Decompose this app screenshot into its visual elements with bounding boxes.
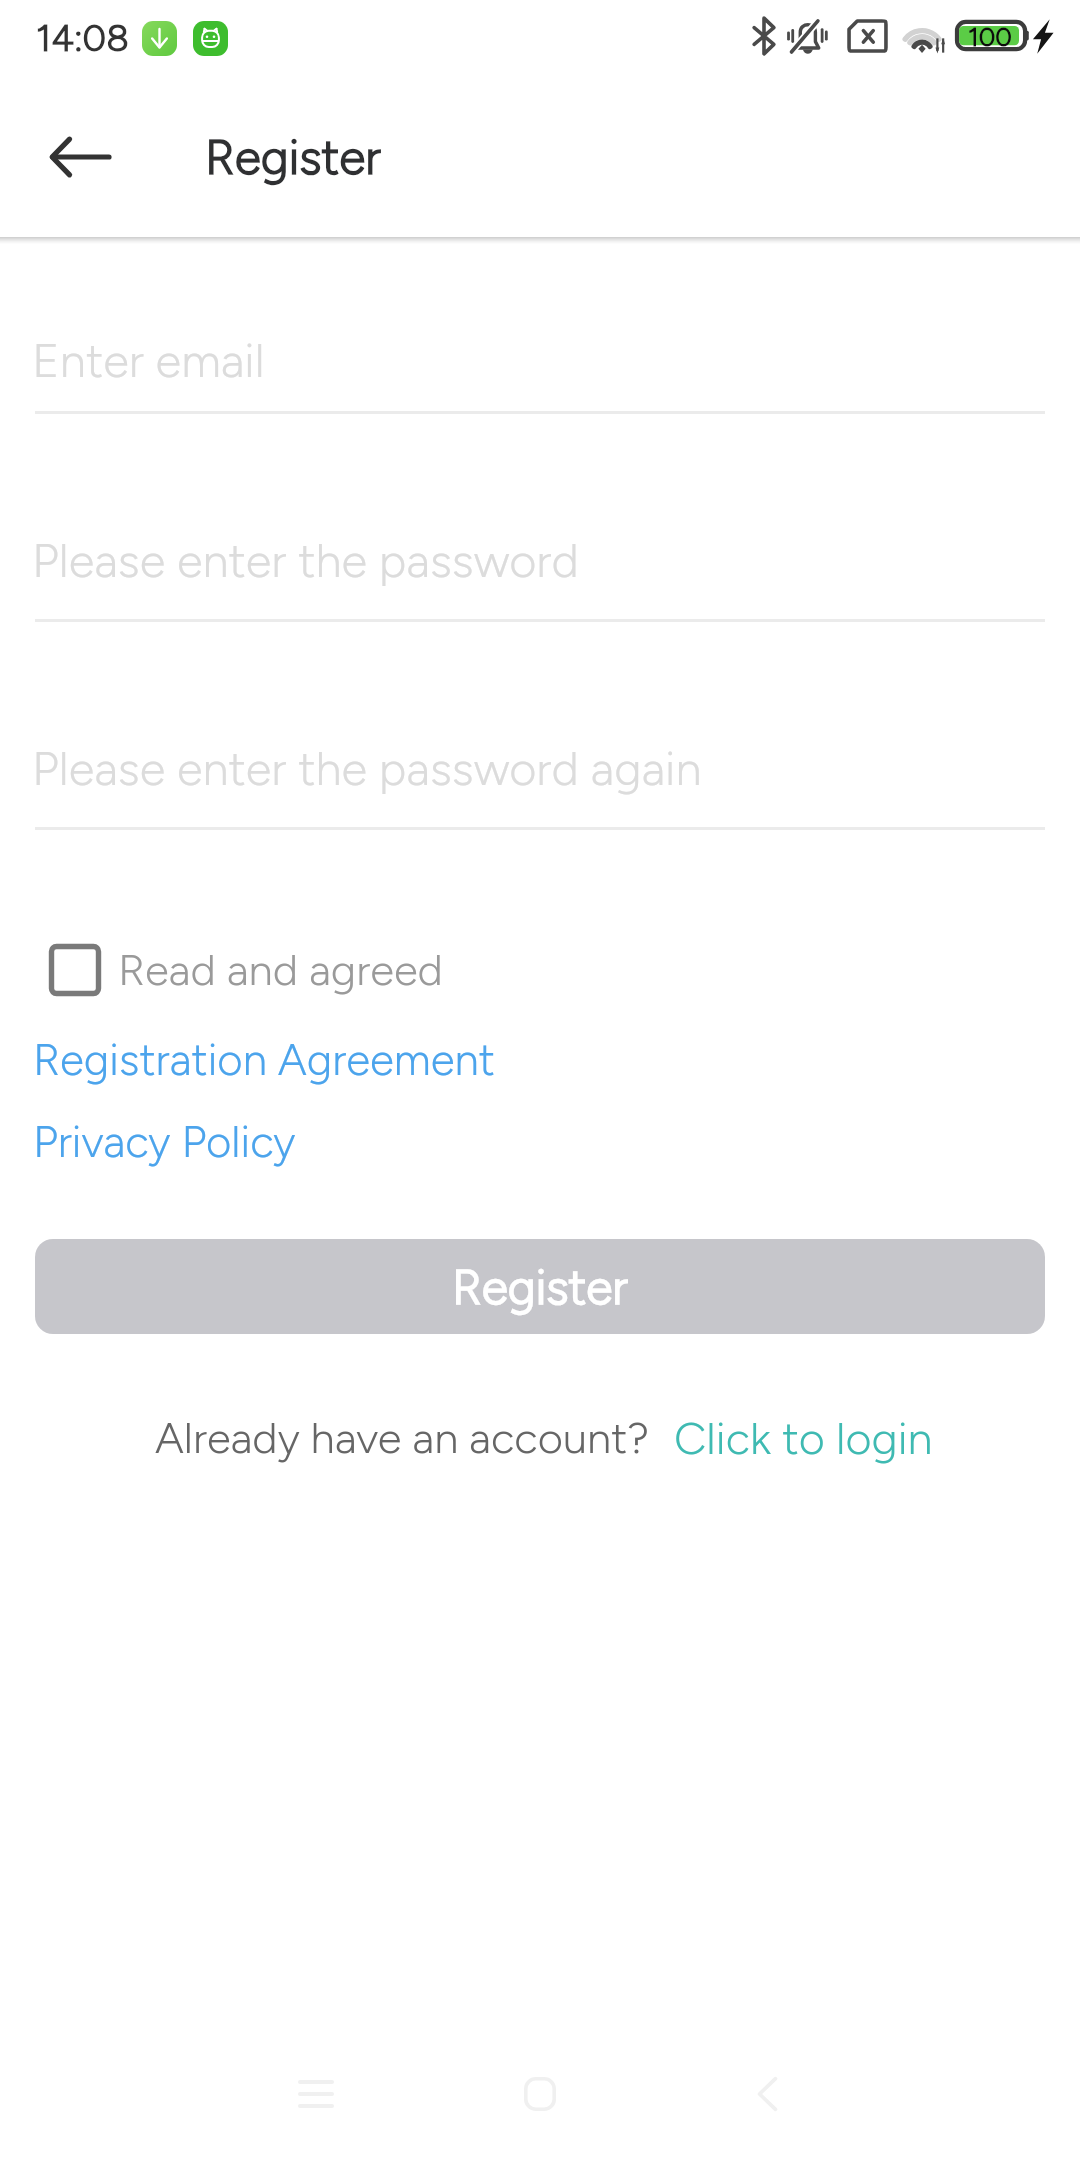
staticText: Read and agreed (118, 944, 443, 996)
staticText: Privacy Policy (33, 1115, 296, 1168)
button[interactable]: Enter email (35, 316, 1045, 414)
button[interactable]: Read and agreed (49, 944, 443, 996)
staticText: 100 (968, 21, 1012, 52)
button[interactable]: Registration Agreement (33, 1033, 495, 1086)
staticText: Already have an account? (155, 1412, 649, 1464)
staticText: Register (205, 128, 381, 186)
staticText: Please enter the password (32, 532, 579, 588)
button[interactable]: Recent apps (271, 2049, 361, 2139)
button[interactable]: Click to login (674, 1411, 933, 1465)
staticText: 14:08 (36, 16, 129, 60)
staticText: Registration Agreement (33, 1033, 495, 1086)
staticText: Please enter the password again (32, 740, 702, 796)
staticText: Click to login (674, 1411, 933, 1465)
button[interactable]: Privacy Policy (33, 1115, 296, 1168)
staticText: Enter email (32, 332, 265, 388)
button[interactable]: Register (35, 1239, 1045, 1334)
button[interactable]: Please enter the password (35, 524, 1045, 622)
button[interactable]: Back (28, 105, 132, 209)
button[interactable]: Please enter the password again (35, 732, 1045, 830)
staticText: Register (452, 1258, 628, 1316)
